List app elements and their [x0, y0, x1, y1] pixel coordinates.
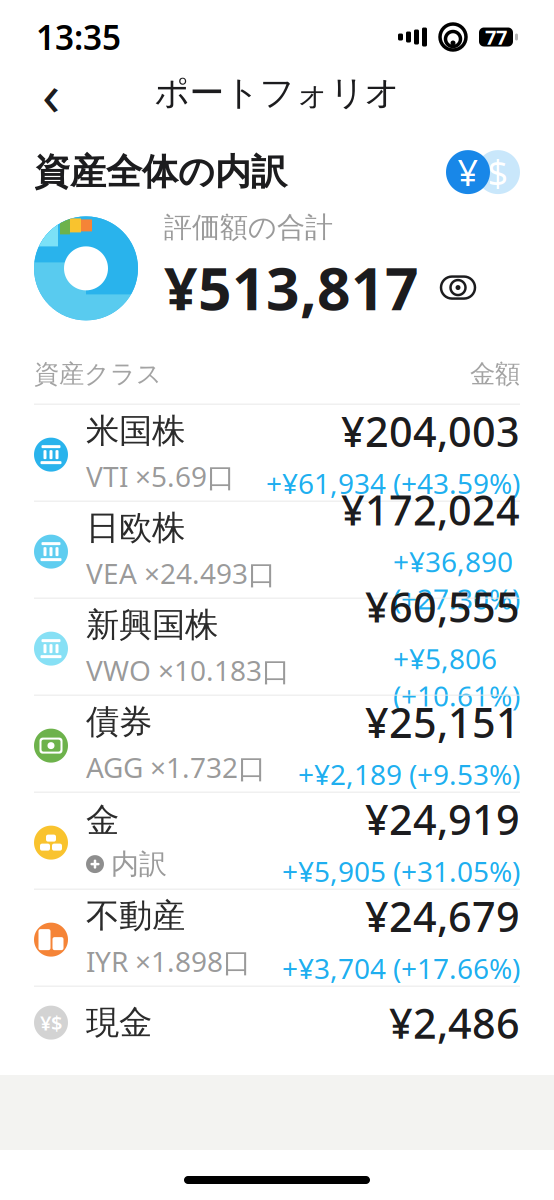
staticText: VWO ×10.183口 — [86, 651, 290, 689]
staticText: IYR ×1.898口 — [86, 942, 251, 980]
staticText: 債券 — [86, 701, 152, 742]
staticText: +¥61,934 (+43.59%) — [266, 464, 520, 502]
staticText: ¥24,919 — [365, 792, 520, 846]
staticText: +¥2,189 (+9.53%) — [298, 755, 520, 793]
staticText: ¥24,679 — [365, 889, 520, 943]
button[interactable]: 金額の表示を切り替え — [435, 267, 481, 309]
button[interactable]: 新興国株 — [0, 599, 554, 695]
button[interactable]: 日欧株 — [0, 502, 554, 598]
button[interactable]: 金 — [0, 793, 554, 889]
button[interactable]: ¥$ — [0, 987, 554, 1059]
button[interactable]: 米ドル表示に切替 — [476, 150, 520, 194]
staticText: $ — [487, 148, 508, 196]
staticText: +¥36,890 (+27.30%) — [393, 543, 520, 617]
staticText: AGG ×1.732口 — [86, 748, 266, 786]
button[interactable]: 米国株 — [0, 405, 554, 501]
staticText: ¥25,151 — [365, 695, 520, 749]
button[interactable]: 不動産 — [0, 890, 554, 986]
staticText: 77 — [485, 24, 507, 50]
staticText: +¥3,704 (+17.66%) — [282, 949, 520, 987]
staticText: 金額 — [470, 358, 520, 390]
staticText: ¥ — [457, 148, 478, 196]
staticText: 内訳 — [111, 847, 167, 881]
staticText: 新興国株 — [86, 604, 218, 645]
staticText: 現金 — [86, 1002, 152, 1043]
staticText: VTI ×5.69口 — [86, 457, 235, 495]
staticText: ¥172,024 — [341, 482, 520, 537]
staticText: VEA ×24.493口 — [86, 554, 276, 592]
staticText: 金 — [86, 800, 119, 841]
staticText: ‹ — [42, 54, 60, 132]
staticText: ポートフォリオ — [154, 72, 399, 114]
staticText: ¥2,486 — [389, 995, 520, 1050]
staticText: 13:35 — [36, 15, 121, 59]
button[interactable]: 債券 — [0, 696, 554, 792]
staticText: ¥204,003 — [341, 404, 520, 458]
staticText: 評価額の合計 — [164, 210, 333, 245]
staticText: +¥5,806 (+10.61%) — [393, 640, 520, 714]
staticText: 不動産 — [86, 895, 185, 936]
button[interactable]: 戻る — [24, 66, 78, 120]
staticText: 資産クラス — [34, 358, 162, 390]
staticText: ¥60,555 — [365, 579, 520, 634]
staticText: +¥5,905 (+31.05%) — [282, 852, 520, 890]
staticText: ¥$ — [40, 1009, 62, 1036]
staticText: ¥513,817 — [164, 249, 419, 326]
staticText: 米国株 — [86, 410, 185, 451]
button[interactable]: 日本円表示に切替 — [446, 150, 490, 194]
staticText: 資産全体の内訳 — [34, 150, 287, 194]
staticText: 日欧株 — [86, 507, 185, 548]
